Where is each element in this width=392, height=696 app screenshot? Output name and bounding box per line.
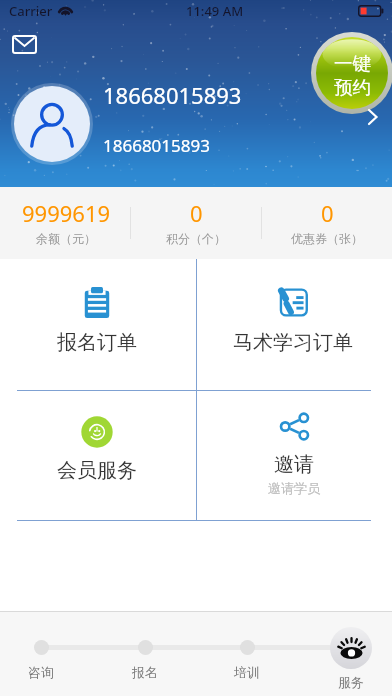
staticText: 9999619 bbox=[22, 198, 111, 228]
staticText: 11:49 AM bbox=[186, 2, 244, 20]
staticText: 服务 bbox=[338, 674, 364, 690]
staticText: 18668015893 bbox=[103, 134, 210, 157]
button[interactable]: 报名订单 bbox=[0, 259, 195, 521]
staticText: 优惠券（张） bbox=[291, 231, 363, 246]
button[interactable]: Profile avatar bbox=[11, 83, 93, 165]
other: More bbox=[365, 106, 381, 128]
button[interactable]: 0 bbox=[131, 187, 261, 259]
button[interactable]: 会员服务 bbox=[0, 259, 195, 521]
staticText: 马术学习订单 bbox=[233, 330, 353, 355]
staticText: 一键 bbox=[334, 52, 371, 75]
staticText: 邀请学员 bbox=[268, 480, 320, 496]
staticText: Carrier bbox=[9, 2, 53, 20]
staticText: 邀请 bbox=[274, 452, 314, 477]
staticText: 18668015893 bbox=[103, 80, 242, 110]
button[interactable]: 0 bbox=[262, 187, 392, 259]
button[interactable]: 培训 bbox=[217, 612, 277, 696]
staticText: 积分（个） bbox=[166, 231, 226, 246]
button[interactable]: 一键预约 bbox=[316, 37, 388, 109]
staticText: 报名 bbox=[132, 664, 158, 680]
button[interactable]: 服务 bbox=[321, 612, 381, 696]
button[interactable]: 9999619 bbox=[1, 187, 131, 259]
staticText: 报名订单 bbox=[57, 330, 137, 355]
button[interactable]: 邀请 bbox=[196, 259, 392, 521]
staticText: 培训 bbox=[234, 664, 260, 680]
staticText: 0 bbox=[321, 198, 334, 228]
button[interactable]: 马术学习订单 bbox=[195, 259, 391, 521]
staticText: 咨询 bbox=[28, 664, 54, 680]
staticText: 余额（元） bbox=[36, 231, 96, 246]
button[interactable]: 咨询 bbox=[11, 612, 71, 696]
staticText: 会员服务 bbox=[57, 458, 137, 483]
button[interactable]: 报名 bbox=[115, 612, 175, 696]
button[interactable]: Messages bbox=[12, 35, 37, 54]
staticText: 0 bbox=[190, 198, 203, 228]
staticText: 预约 bbox=[334, 76, 371, 99]
